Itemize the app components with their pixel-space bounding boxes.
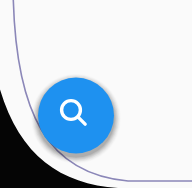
button[interactable]: Search (0, 0, 192, 188)
